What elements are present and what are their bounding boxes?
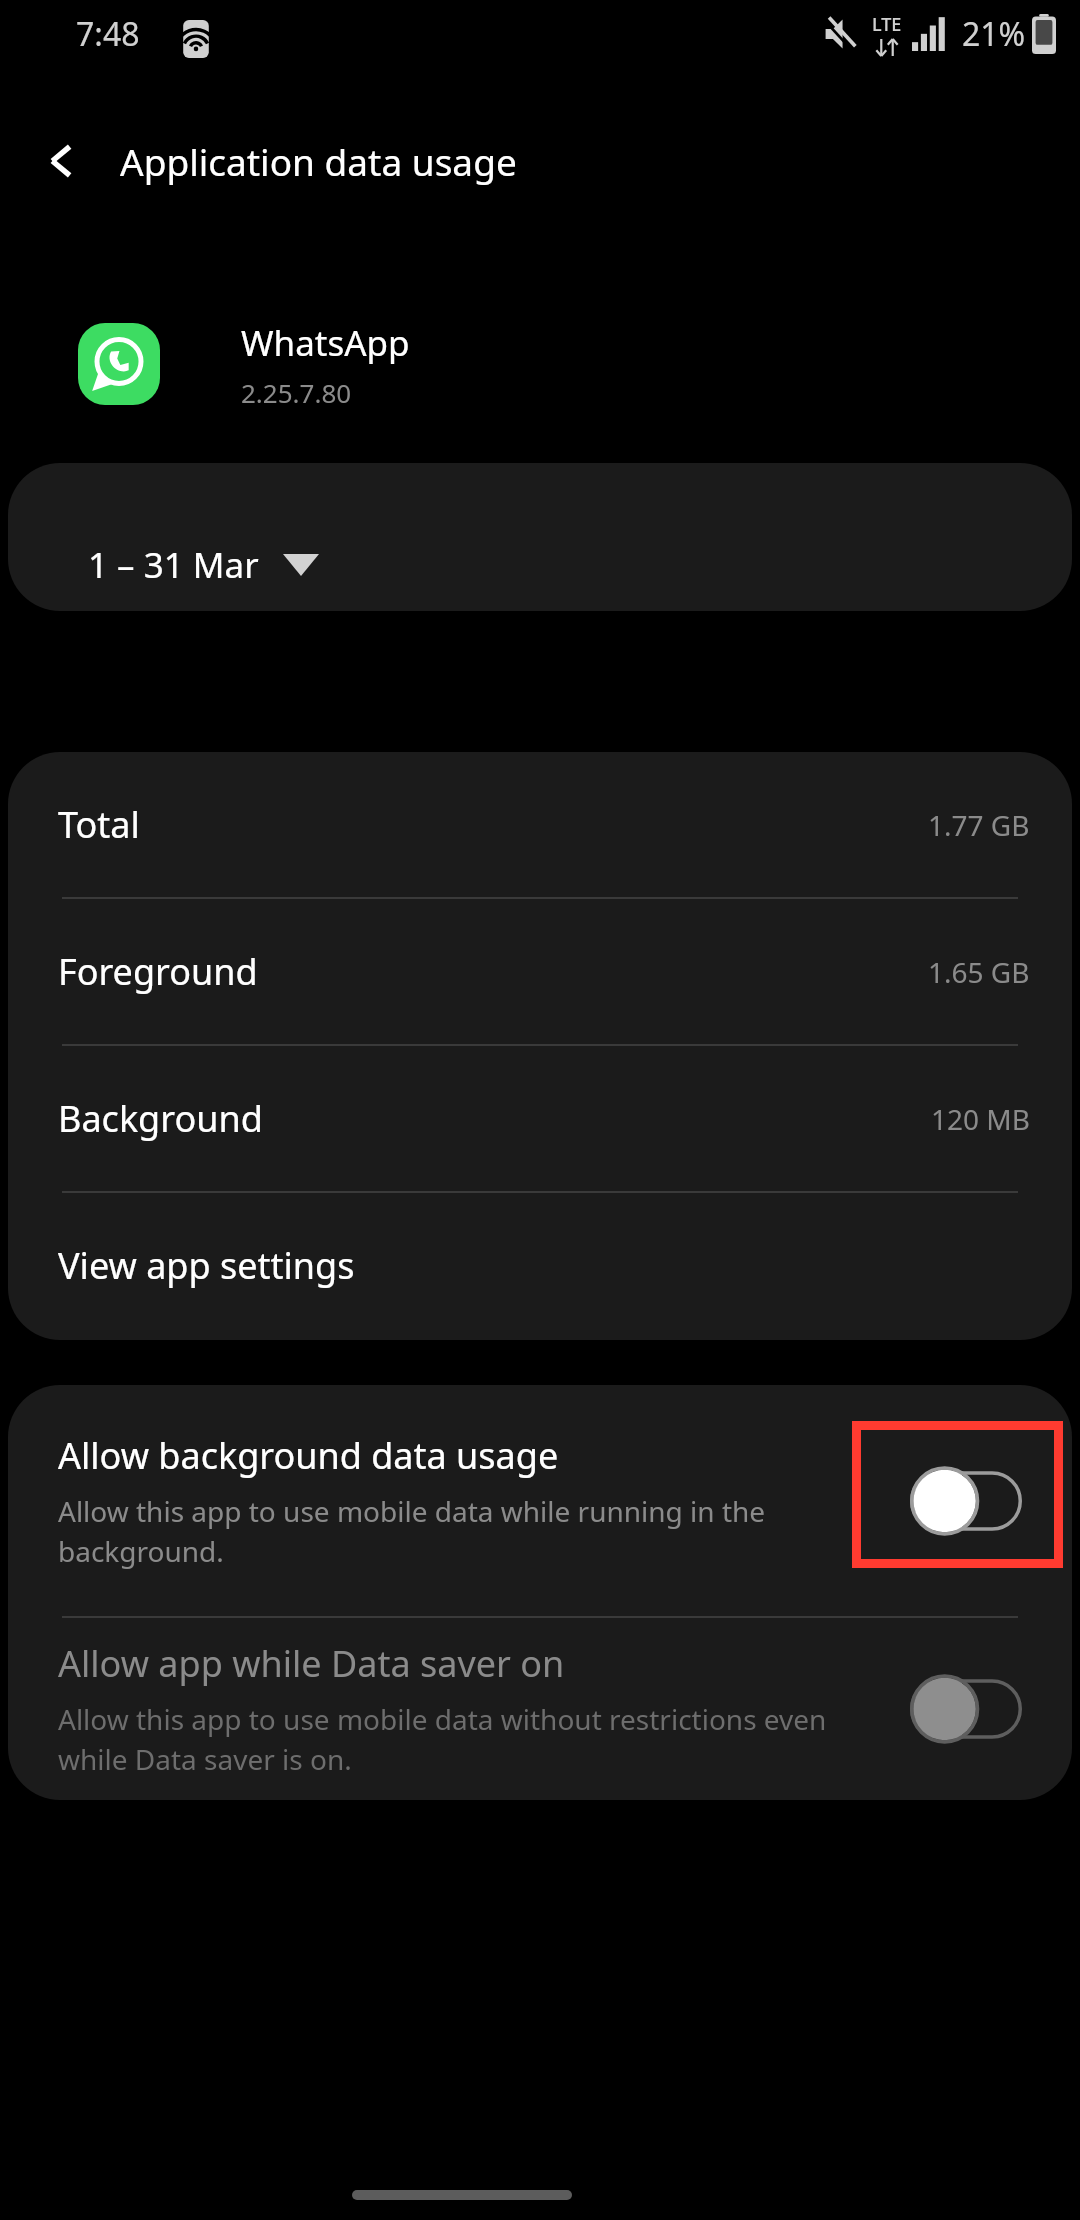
staticText: Allow app while Data saver on	[58, 1639, 565, 1688]
staticText: 120 MB	[931, 1100, 1030, 1138]
staticText: Allow background data usage	[58, 1431, 559, 1480]
staticText: Allow this app to use mobile data withou…	[58, 1700, 840, 1779]
button[interactable]: Allow background data usage toggle	[910, 1466, 1022, 1536]
staticText: 7:48	[76, 12, 140, 56]
button[interactable]: Background	[8, 1046, 1072, 1191]
staticText: LTE	[872, 12, 902, 37]
button[interactable]: Back	[24, 124, 98, 198]
staticText: 21%	[962, 12, 1026, 56]
staticText: Allow this app to use mobile data while …	[58, 1492, 840, 1571]
staticText: View app settings	[58, 1241, 355, 1290]
staticText: 2.25.7.80	[241, 375, 352, 410]
button[interactable]: Foreground	[8, 899, 1072, 1044]
button[interactable]: Allow app while Data saver on	[8, 1618, 1072, 1800]
button[interactable]: 1 – 31 Mar	[62, 533, 345, 597]
button[interactable]: Allow app while Data saver on toggle	[910, 1674, 1022, 1744]
staticText: Foreground	[58, 947, 258, 996]
staticText: Background	[58, 1094, 263, 1143]
staticText: Application data usage	[120, 136, 517, 186]
staticText: 1.65 GB	[928, 953, 1030, 991]
button[interactable]: Total	[8, 752, 1072, 897]
button[interactable]: View app settings	[8, 1193, 1072, 1338]
staticText: Total	[58, 800, 140, 849]
button[interactable]: Allow background data usage	[8, 1385, 1072, 1616]
staticText: WhatsApp	[241, 319, 410, 367]
staticText: 1 – 31 Mar	[88, 541, 259, 589]
staticText: 1.77 GB	[928, 806, 1030, 844]
